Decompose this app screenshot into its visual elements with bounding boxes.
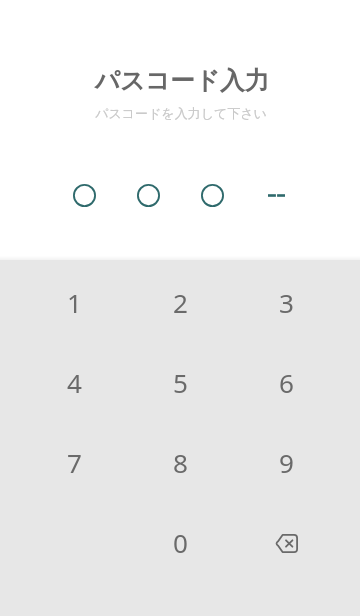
button[interactable]: 2 (127, 263, 233, 343)
staticText: 5 (173, 365, 188, 401)
button[interactable]: 5 (127, 343, 233, 423)
staticText: パスコードを入力して下さい (1, 105, 360, 121)
staticText: 0 (173, 525, 188, 561)
staticText: パスコード入力 (2, 65, 360, 96)
staticText: 7 (67, 445, 82, 481)
button[interactable]: 0 (127, 503, 233, 583)
staticText: 3 (279, 285, 294, 321)
staticText: 2 (173, 285, 188, 321)
staticText: 6 (279, 365, 294, 401)
button[interactable]: Backspace (233, 503, 339, 583)
staticText: 4 (67, 365, 82, 401)
button[interactable]: 6 (233, 343, 339, 423)
button[interactable]: 8 (127, 423, 233, 503)
button[interactable]: 1 (21, 263, 127, 343)
button[interactable]: 9 (233, 423, 339, 503)
button[interactable]: 7 (21, 423, 127, 503)
button[interactable]: 3 (233, 263, 339, 343)
staticText: 1 (67, 285, 82, 321)
staticText: 8 (173, 445, 188, 481)
staticText: 9 (279, 445, 294, 481)
other: Backspace (274, 534, 298, 553)
button[interactable]: 4 (21, 343, 127, 423)
